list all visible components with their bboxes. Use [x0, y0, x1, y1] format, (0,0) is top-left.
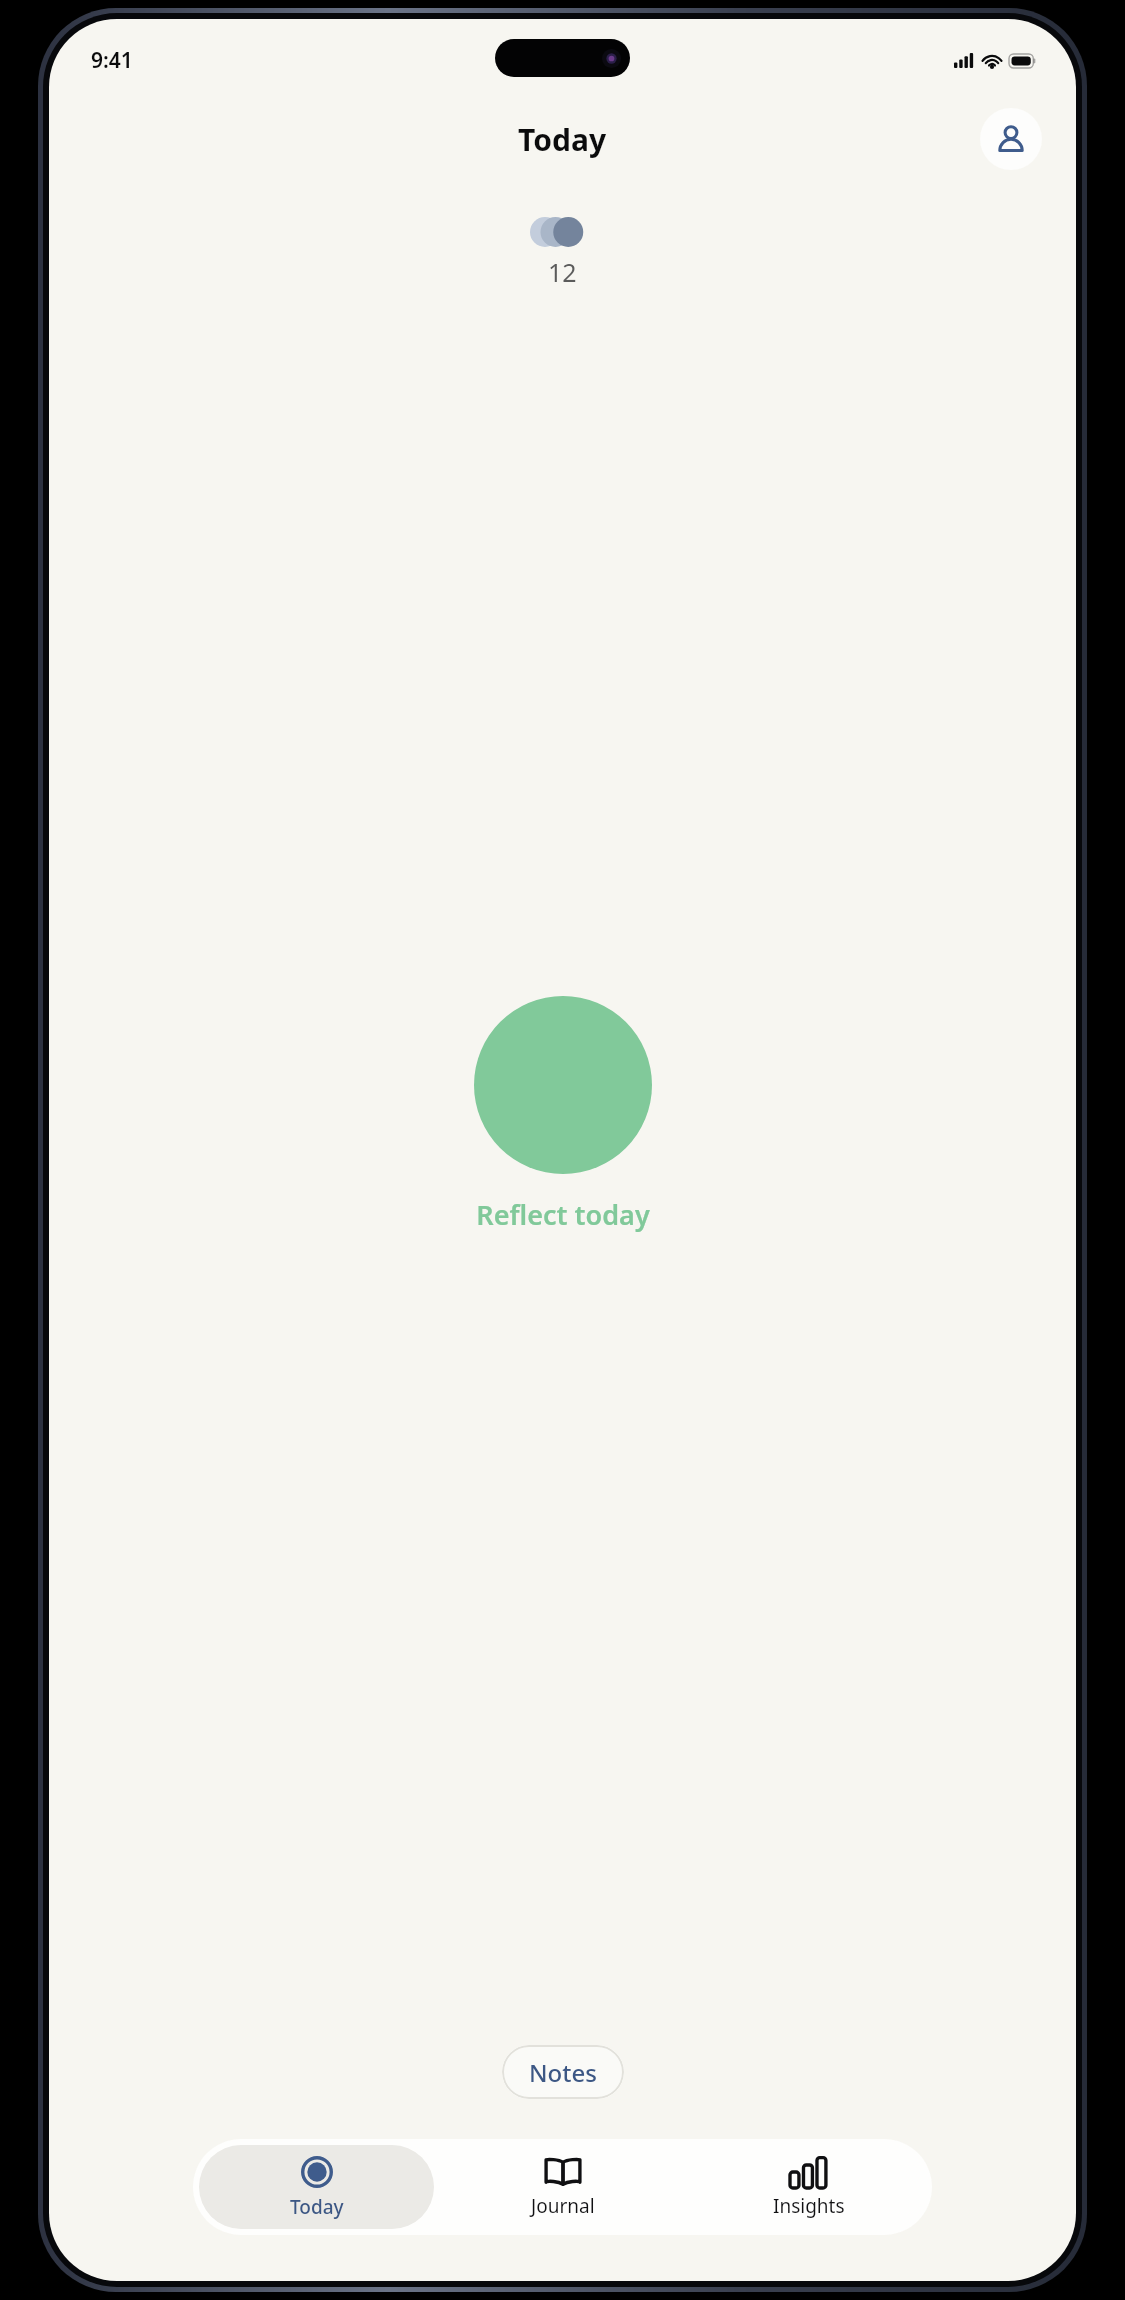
- staticText: Insights: [773, 2193, 845, 2219]
- staticText: Journal: [531, 2193, 595, 2219]
- staticText: Today: [290, 2194, 344, 2220]
- staticText: 9:41: [91, 46, 133, 75]
- staticText: Today: [518, 119, 607, 160]
- button[interactable]: Today: [199, 2145, 434, 2229]
- button[interactable]: Profile: [980, 108, 1042, 170]
- staticText: Notes: [529, 2056, 597, 2089]
- button[interactable]: Reflect today: [474, 996, 652, 1174]
- button[interactable]: Notes: [502, 2045, 624, 2099]
- staticText: 12: [548, 255, 577, 289]
- button[interactable]: Journal: [440, 2139, 686, 2235]
- button[interactable]: Insights: [686, 2139, 932, 2235]
- staticText: Reflect today: [476, 1196, 650, 1233]
